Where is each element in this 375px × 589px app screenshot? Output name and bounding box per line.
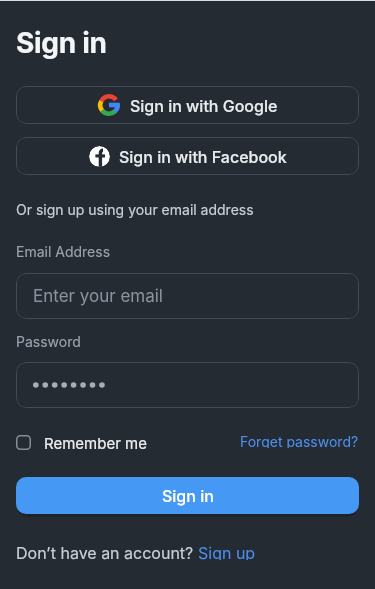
button[interactable]: Sign in with Facebook <box>16 137 359 175</box>
staticText: Don’t have an account? <box>16 543 198 560</box>
staticText: Or sign up using your email address <box>16 201 254 218</box>
staticText: Password <box>16 333 81 348</box>
staticText: Email Address <box>16 243 111 259</box>
button[interactable]: Sign up <box>198 543 256 560</box>
staticText: Enter your email <box>33 286 163 307</box>
staticText: Sign in <box>162 486 214 505</box>
staticText: Sign in with Facebook <box>119 147 287 166</box>
button[interactable] <box>16 362 359 408</box>
staticText: Forget password? <box>240 433 359 448</box>
button[interactable]: Forget password? <box>0 433 359 448</box>
button[interactable]: Sign in <box>16 477 359 514</box>
button[interactable]: Enter your email <box>16 273 359 319</box>
staticText: Sign in <box>16 26 107 60</box>
staticText: Sign up <box>198 543 256 560</box>
staticText: Sign in with Google <box>130 96 278 115</box>
staticText: Remember me <box>44 434 147 451</box>
button[interactable]: Remember me <box>16 434 147 451</box>
button[interactable]: Sign in with Google <box>16 86 359 124</box>
